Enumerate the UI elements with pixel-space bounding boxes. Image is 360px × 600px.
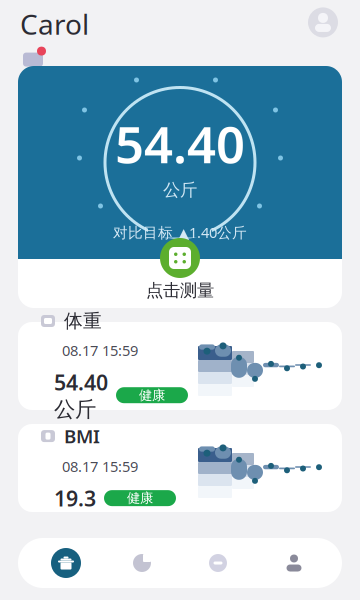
- staticText: 08.17 15:59: [62, 456, 138, 476]
- button[interactable]: Account: [256, 541, 332, 585]
- button[interactable]: Home: [28, 541, 104, 585]
- staticText: 54.40公斤: [54, 368, 108, 422]
- button[interactable]: Discover: [180, 541, 256, 585]
- staticText: 54.40: [115, 110, 245, 177]
- staticText: 健康: [139, 387, 165, 403]
- staticText: BMI: [64, 424, 100, 448]
- button[interactable]: 体重: [18, 322, 342, 410]
- button[interactable]: Statistics: [104, 541, 180, 585]
- staticText: 19.3: [54, 484, 96, 512]
- staticText: 健康: [127, 490, 153, 506]
- staticText: 公斤: [163, 179, 197, 201]
- button[interactable]: Messages: [20, 47, 46, 69]
- button[interactable]: BMI: [18, 424, 342, 512]
- button[interactable]: Start measurement: [158, 236, 202, 280]
- staticText: 体重: [64, 309, 102, 332]
- staticText: 点击测量: [146, 280, 214, 301]
- staticText: Carol: [20, 5, 89, 43]
- staticText: 08.17 15:59: [62, 340, 138, 360]
- button[interactable]: Profile: [306, 5, 340, 39]
- staticText: 对比目标 ▲1.40公斤: [113, 223, 247, 242]
